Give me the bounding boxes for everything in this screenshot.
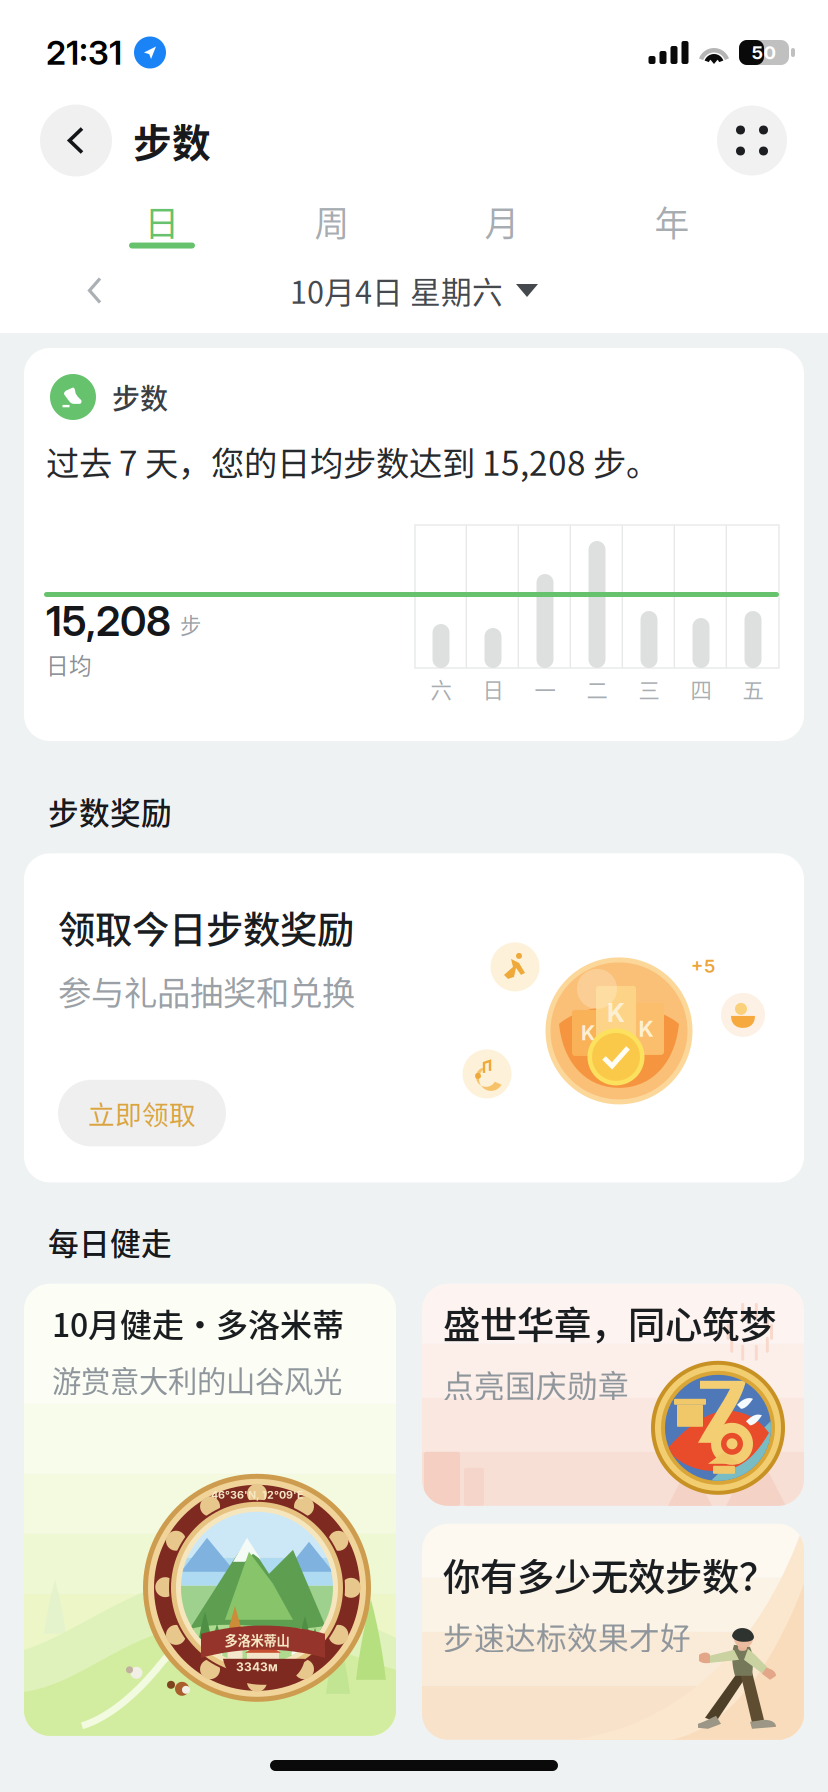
staticText: 点亮国庆勋章 [443, 1362, 629, 1406]
staticText: K [581, 1021, 595, 1045]
staticText: K [638, 1016, 653, 1042]
staticText: 46°36'N, 12°09'E [211, 1488, 303, 1501]
button[interactable]: 你有多少无效步数？ [422, 1524, 804, 1740]
button[interactable]: 月 [417, 182, 587, 254]
staticText: K [607, 998, 625, 1028]
staticText: 参与礼品抽奖和兑换 [58, 966, 355, 1015]
button[interactable]: 日 [77, 182, 247, 254]
staticText: 六 [430, 674, 451, 704]
button[interactable]: 盛世华章，同心筑梦 [422, 1284, 804, 1506]
staticText: 10月健走·多洛米蒂 [52, 1300, 344, 1346]
staticText: 立即领取 [88, 1094, 196, 1132]
staticText: 月 [484, 196, 519, 247]
staticText: 步数奖励 [48, 789, 172, 833]
staticText: 游赏意大利的山谷风光 [52, 1358, 342, 1401]
staticText: 日 [144, 196, 179, 247]
staticText: 10月4日 星期六 [290, 268, 503, 313]
button[interactable]: 46°36'N, 12°09'E [24, 1284, 396, 1736]
staticText: 3343м [236, 1660, 278, 1674]
staticText: 每日健走 [48, 1219, 172, 1264]
staticText: 步 [180, 609, 201, 640]
button[interactable]: +5 [24, 853, 804, 1182]
staticText: 步数 [112, 377, 168, 417]
staticText: 年 [654, 196, 689, 247]
staticText: 日均 [46, 648, 92, 681]
staticText: 21:31 [46, 32, 122, 73]
staticText: 周 [314, 196, 349, 247]
staticText: +5 [691, 955, 715, 977]
staticText: 过去 7 天，您的日均步数达到 15,208 步。 [46, 437, 659, 485]
staticText: 三 [638, 674, 659, 704]
staticText: 15,208 [46, 596, 171, 646]
staticText: 步数 [133, 112, 211, 168]
button[interactable]: Back [40, 104, 112, 176]
staticText: 一 [534, 674, 555, 704]
button[interactable]: 周 [247, 182, 417, 254]
staticText: 日 [482, 674, 503, 704]
staticText: 二 [586, 674, 607, 704]
staticText: 四 [690, 674, 711, 704]
staticText: 盛世华章，同心筑梦 [443, 1296, 776, 1350]
staticText: 领取今日步数奖励 [58, 900, 354, 954]
staticText: 50 [751, 41, 776, 64]
button[interactable]: More options [717, 105, 787, 175]
staticText: 步速达标效果才好 [443, 1614, 691, 1658]
button[interactable]: 年 [587, 182, 757, 254]
button[interactable]: Previous day [62, 252, 128, 328]
staticText: 你有多少无效步数？ [443, 1548, 776, 1602]
staticText: 五 [742, 674, 763, 704]
staticText: 多洛米蒂山 [224, 1630, 289, 1649]
